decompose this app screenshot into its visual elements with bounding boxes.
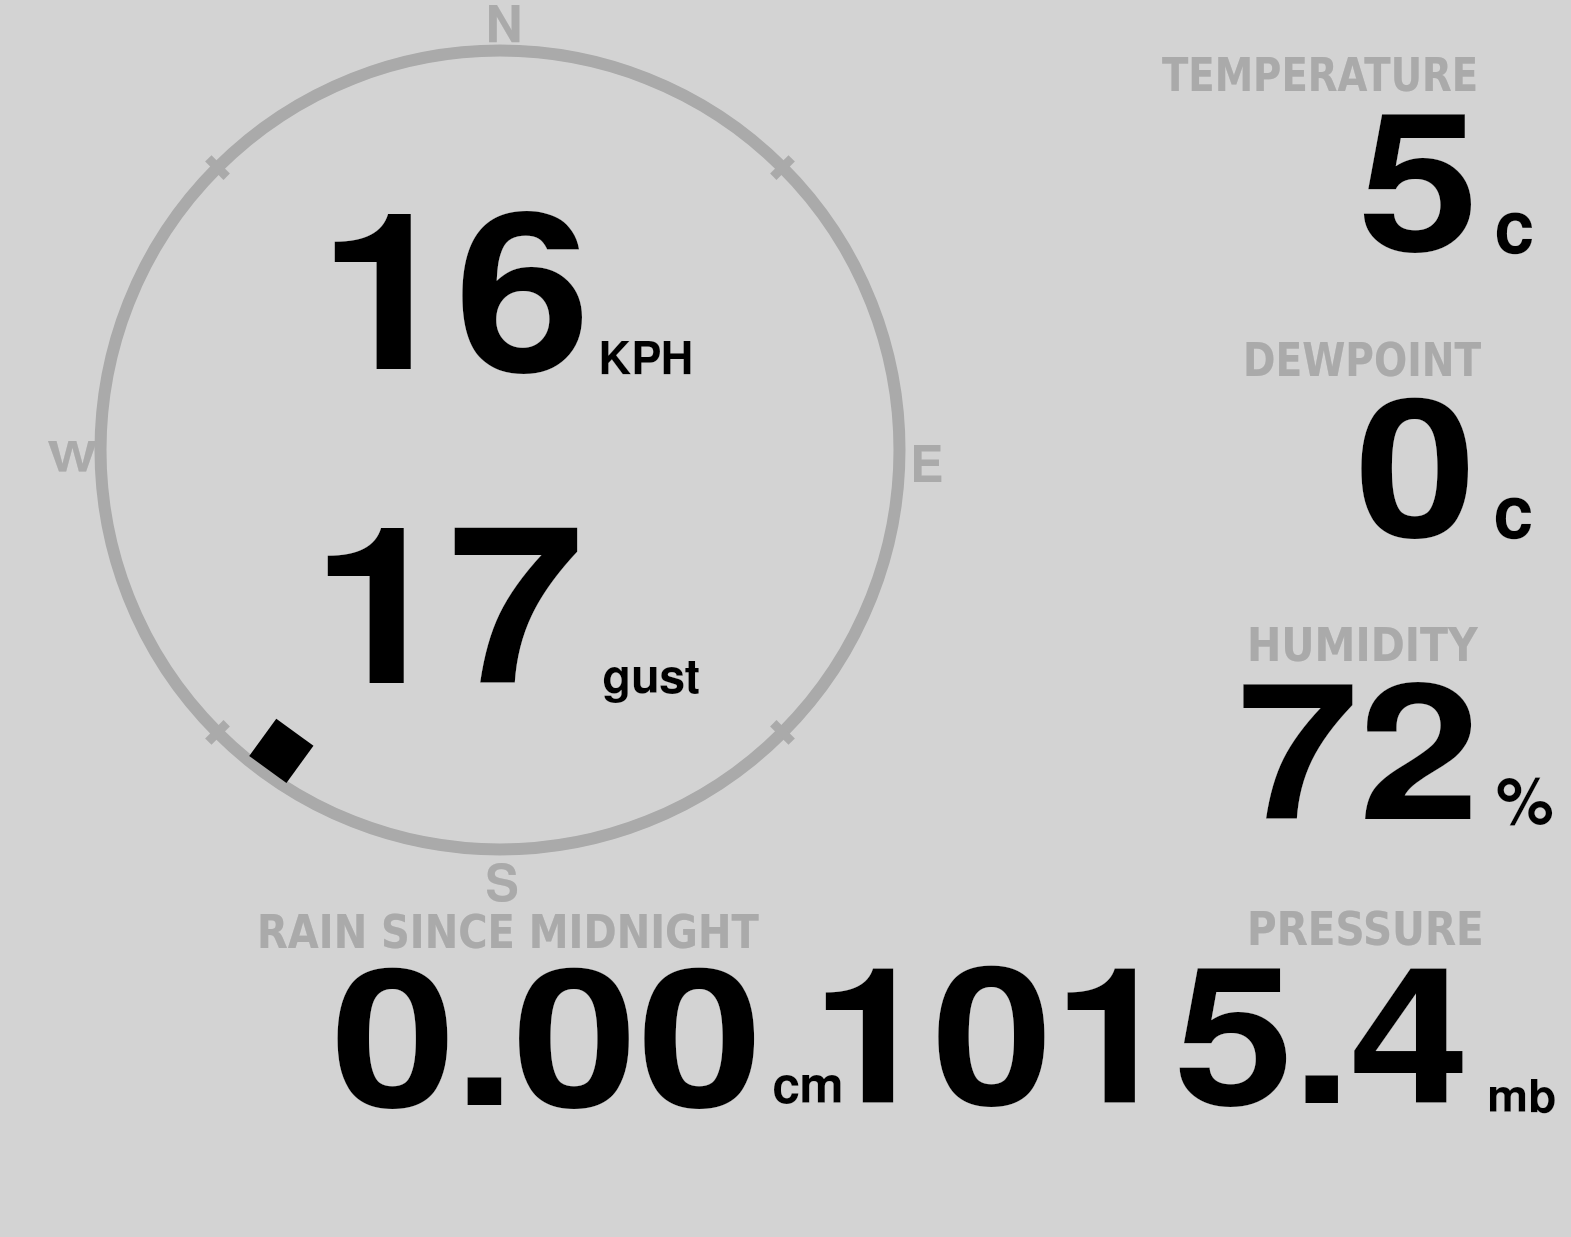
staticText: gust xyxy=(602,655,701,702)
staticText: N xyxy=(485,1,524,52)
staticText: mb xyxy=(1487,1075,1557,1121)
button[interactable]: Dew point xyxy=(1120,300,1560,560)
staticText: c xyxy=(1494,194,1535,266)
staticText: 0 xyxy=(1355,383,1477,573)
staticText: S xyxy=(485,861,520,911)
staticText: % xyxy=(1496,772,1554,837)
staticText: KPH xyxy=(598,338,695,384)
staticText: 72 xyxy=(1237,667,1481,857)
staticText: 1015.4 xyxy=(811,951,1470,1141)
staticText: 5 xyxy=(1358,97,1480,287)
button[interactable]: Humidity xyxy=(1120,585,1560,855)
staticText: PRESSURE xyxy=(1247,901,1484,955)
staticText: 17 xyxy=(311,509,585,727)
staticText: W xyxy=(47,439,98,480)
button[interactable]: Temperature xyxy=(1120,30,1560,280)
button[interactable]: Wind speed and direction xyxy=(90,40,910,860)
staticText: cm xyxy=(772,1063,844,1113)
staticText: HUMIDITY xyxy=(1247,618,1478,672)
staticText: 16 xyxy=(318,195,592,413)
staticText: TEMPERATURE xyxy=(1162,48,1478,103)
button[interactable]: Rain since midnight xyxy=(240,880,860,1130)
staticText: RAIN SINCE MIDNIGHT xyxy=(257,905,759,959)
staticText: c xyxy=(1493,479,1534,551)
button[interactable]: Pressure xyxy=(870,880,1570,1130)
staticText: E xyxy=(910,442,944,492)
staticText: DEWPOINT xyxy=(1243,333,1482,387)
staticText: 0.00 xyxy=(331,953,763,1143)
